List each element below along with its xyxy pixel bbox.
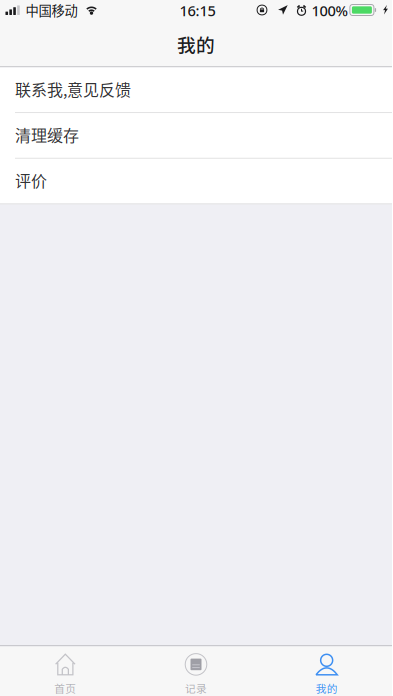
staticText: 首页 <box>54 680 76 696</box>
staticText: 评价 <box>15 168 47 192</box>
staticText: 清理缓存 <box>15 123 79 146</box>
button[interactable]: 首页 <box>0 646 131 696</box>
staticText: 100% <box>311 1 347 20</box>
staticText: 记录 <box>185 680 207 696</box>
staticText: 我的 <box>316 680 338 696</box>
staticText: 联系我,意见反馈 <box>15 77 131 100</box>
button[interactable]: 记录 <box>131 646 261 696</box>
button[interactable]: 联系我,意见反馈 <box>0 68 392 112</box>
button[interactable]: 清理缓存 <box>0 113 392 158</box>
staticText: 16:15 <box>179 1 215 20</box>
button[interactable]: 我的 <box>261 646 392 696</box>
staticText: 中国移动 <box>25 0 77 20</box>
button[interactable]: 评价 <box>0 159 392 203</box>
staticText: 我的 <box>177 30 215 57</box>
